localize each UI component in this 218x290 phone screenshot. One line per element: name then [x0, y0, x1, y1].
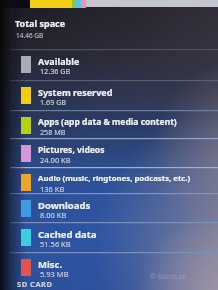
- staticText: © Bazoš.sk: [150, 272, 186, 282]
- button[interactable]: Available: [0, 49, 218, 80]
- staticText: Misc.: [38, 258, 63, 271]
- staticText: 14.46 GB: [16, 31, 44, 40]
- staticText: Downloads: [38, 199, 91, 212]
- button[interactable]: Cached data: [0, 222, 218, 252]
- button[interactable]: Downloads: [0, 193, 218, 222]
- staticText: Cached data: [38, 228, 97, 241]
- staticText: 5.93 MB: [40, 269, 69, 279]
- button[interactable]: Apps (app data & media content): [0, 110, 218, 138]
- button[interactable]: System reserved: [0, 80, 218, 110]
- staticText: System reserved: [38, 86, 113, 98]
- button[interactable]: Pictures, videos: [0, 138, 218, 167]
- staticText: 51.56 KB: [40, 239, 71, 249]
- staticText: 1.69 GB: [40, 97, 67, 107]
- staticText: 8.00 KB: [40, 210, 67, 220]
- staticText: 12.36 GB: [40, 66, 71, 76]
- button[interactable]: Misc.: [0, 252, 218, 280]
- staticText: Apps (app data & media content): [38, 116, 177, 128]
- staticText: Available: [38, 55, 80, 67]
- staticText: Pictures, videos: [38, 144, 105, 156]
- staticText: 24.00 KB: [40, 155, 71, 165]
- staticText: 258 MB: [40, 127, 66, 137]
- button[interactable]: Total space: [0, 10, 218, 49]
- button[interactable]: Audio (music, ringtones, podcasts, etc.): [0, 167, 218, 193]
- staticText: Audio (music, ringtones, podcasts, etc.): [38, 173, 191, 184]
- staticText: SD CARD: [17, 279, 53, 289]
- staticText: 136 KB: [40, 184, 65, 194]
- staticText: Total space: [15, 17, 66, 29]
